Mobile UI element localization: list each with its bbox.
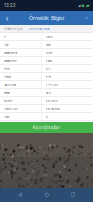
staticText: 12 — [45, 115, 48, 118]
staticText: ▲ — [80, 3, 85, 8]
staticText: Koordinat Listesi — [29, 27, 50, 30]
button[interactable]: Search — [82, 11, 91, 25]
staticText: ▰ — [85, 3, 89, 8]
staticText: ⌕ — [85, 15, 88, 21]
staticText: Denizli — [45, 35, 53, 38]
staticText: ◢ — [78, 4, 80, 7]
staticText: Kuru tarım — [45, 99, 57, 102]
staticText: ‹ — [5, 13, 8, 23]
staticText: Koordinatlar — [32, 125, 60, 130]
staticText: Örneklik Bilgisi — [4, 27, 23, 30]
staticText: Tarla — [45, 91, 50, 94]
staticText: 3.455,86 — [45, 83, 58, 86]
staticText: 122 — [45, 67, 50, 70]
button[interactable]: Koordinatlar — [0, 122, 93, 133]
staticText: Mahalle/Köy — [4, 51, 17, 54]
staticText: Yukarı — [45, 59, 52, 62]
staticText: Zemin Tipi — [4, 107, 18, 110]
staticText: Örneklik Bilgisi — [29, 15, 64, 21]
staticText: 4/18 — [45, 75, 51, 78]
staticText: Nitelik — [4, 99, 12, 102]
staticText: Tavas — [45, 43, 50, 46]
staticText: Nikfer — [45, 51, 52, 54]
staticText: Parsel — [4, 75, 11, 78]
staticText: ◁ — [18, 192, 22, 198]
staticText: Tapu Alanı — [4, 83, 16, 86]
staticText: □ — [71, 192, 75, 198]
staticText: Ada — [4, 67, 9, 70]
staticText: Vasfı — [4, 115, 10, 118]
staticText: İl — [4, 35, 6, 38]
button[interactable]: Örneklik Bilgisi — [1, 25, 26, 32]
button[interactable]: Recent apps — [66, 189, 79, 201]
staticText: Ana Taşınmaz — [45, 107, 59, 110]
staticText: Mevki — [4, 91, 10, 94]
button[interactable]: Back — [13, 189, 26, 201]
button[interactable]: Back — [2, 11, 12, 25]
button[interactable]: Koordinat Listesi — [26, 25, 53, 32]
button[interactable]: Home — [40, 189, 53, 201]
staticText: 13:22 — [4, 3, 16, 8]
staticText: Mahalle No — [4, 59, 17, 62]
staticText: İlçe — [4, 43, 8, 46]
staticText: ○ — [44, 192, 48, 198]
